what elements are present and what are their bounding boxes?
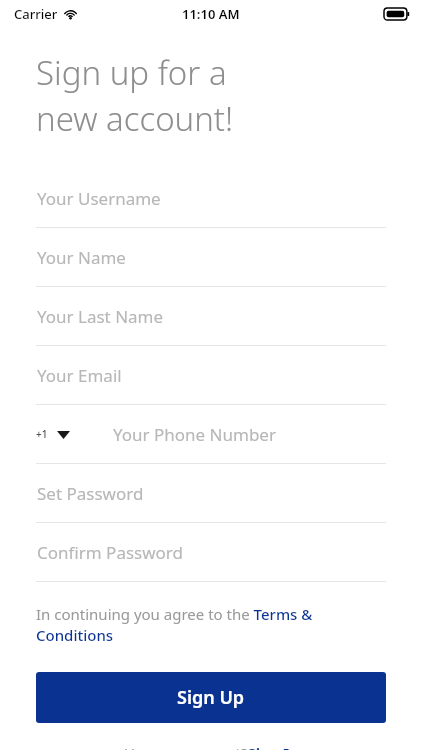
button[interactable]: Your Username	[36, 169, 386, 228]
staticText: +1	[36, 427, 48, 441]
staticText: Have an account?Sign In	[124, 743, 299, 750]
button[interactable]: In continuing you agree to the Terms & C…	[36, 604, 386, 646]
button[interactable]: Select country code	[36, 405, 70, 463]
staticText: Sign up for a new account!	[36, 50, 234, 141]
button[interactable]: Your Name	[36, 228, 386, 287]
staticText: Carrier	[14, 5, 58, 23]
button[interactable]: Sign Up	[36, 672, 386, 723]
staticText: 11:10 AM	[182, 5, 240, 23]
staticText: Your Last Name	[37, 305, 164, 328]
button[interactable]: Set Password	[36, 464, 386, 523]
staticText: Your Phone Number	[113, 423, 276, 446]
staticText: Set Password	[37, 482, 144, 505]
staticText: Your Name	[37, 246, 126, 269]
staticText: Your Username	[37, 187, 161, 210]
button[interactable]: Your Last Name	[36, 287, 386, 346]
staticText: In continuing you agree to the Terms & C…	[36, 604, 386, 646]
staticText: Sign Up	[177, 685, 245, 710]
button[interactable]: Have an account?Sign In	[124, 743, 299, 750]
staticText: Confirm Password	[37, 541, 183, 564]
button[interactable]: Confirm Password	[36, 523, 386, 582]
button[interactable]: Your Email	[36, 346, 386, 405]
staticText: Your Email	[37, 364, 122, 387]
